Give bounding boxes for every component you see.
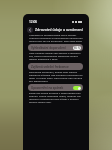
staticText: 86 % [74, 46, 80, 50]
staticText: Zdravotní údaje a oznámení [35, 27, 83, 32]
staticText: Dostanete oznámení, pokud vaše srdeční f… [29, 70, 84, 82]
staticText: Vyhledávání doporučení [31, 46, 66, 50]
staticText: Zvýšená srdeční frekvence [31, 65, 69, 69]
staticText: Budík vás jemně probudí v nejvhodnější f… [29, 91, 84, 103]
staticText: 12:06 [29, 20, 38, 24]
staticText: Upozornění na spánek [31, 86, 64, 90]
staticText: Vaše hodinky sledují vaši aktivitu a upo… [29, 51, 84, 60]
button[interactable]: Upozornění na spánek [28, 84, 83, 91]
button[interactable]: Back [27, 27, 33, 33]
button[interactable]: Vyhledávání doporučení [28, 44, 83, 51]
staticText: Nastavení si upravte podle svých potřeb.… [29, 33, 84, 42]
button[interactable]: Zvýšená srdeční frekvence [28, 63, 83, 70]
